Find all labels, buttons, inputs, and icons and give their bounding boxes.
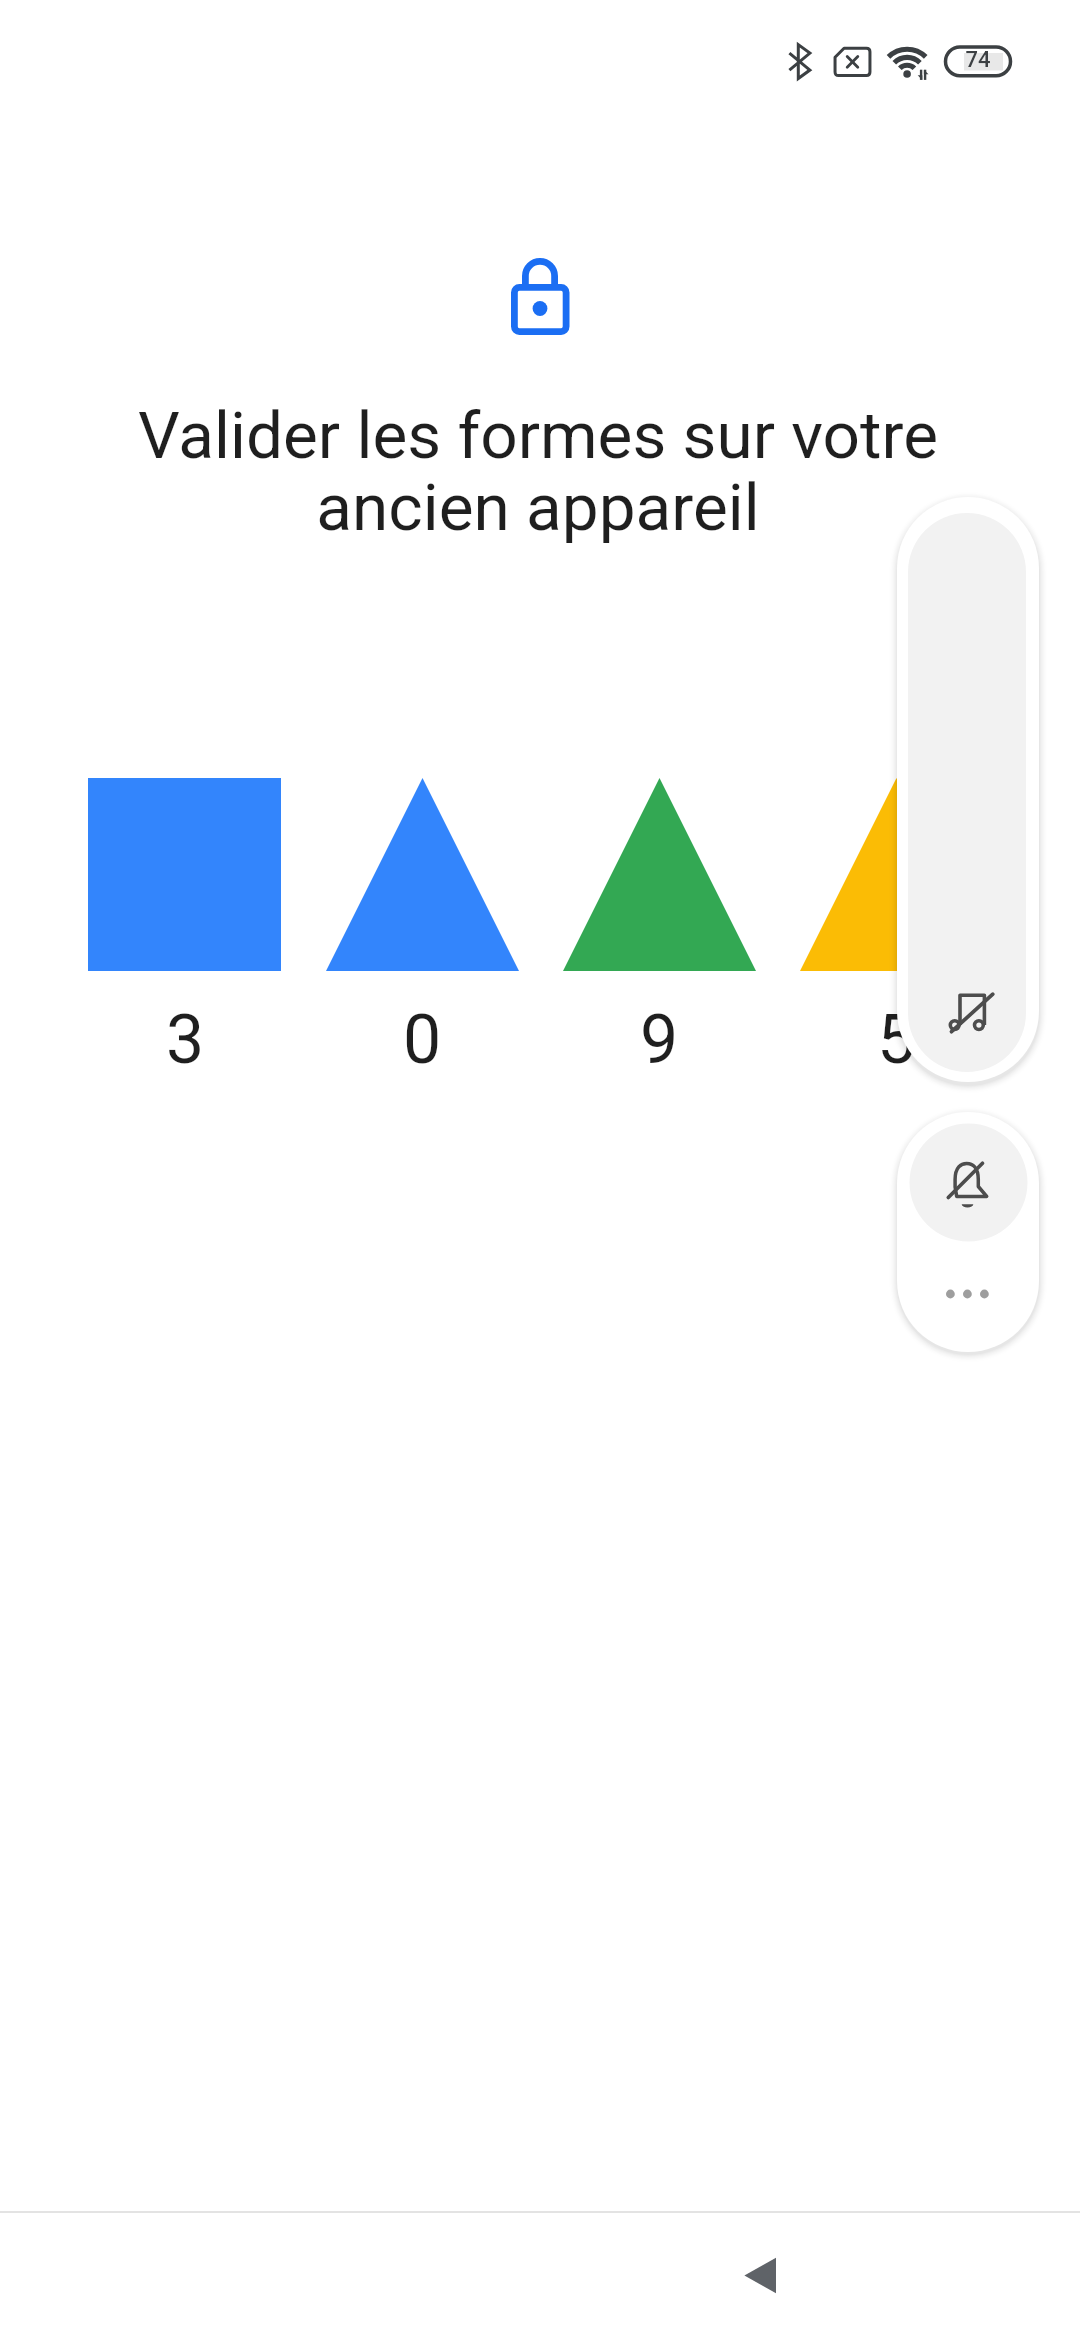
staticText: 0 <box>362 1000 482 1080</box>
staticText: 5 <box>836 1000 956 1080</box>
button[interactable]: Media volume <box>897 497 1039 1082</box>
staticText: 9 <box>599 1000 719 1080</box>
staticText: 3 <box>125 1000 245 1080</box>
staticText: 74 <box>918 47 1038 73</box>
staticText: Valider les formes sur votre ancien appa… <box>88 397 988 546</box>
button[interactable]: Back <box>700 2211 820 2340</box>
button[interactable]: Ringer mode, silent <box>897 1112 1039 1352</box>
